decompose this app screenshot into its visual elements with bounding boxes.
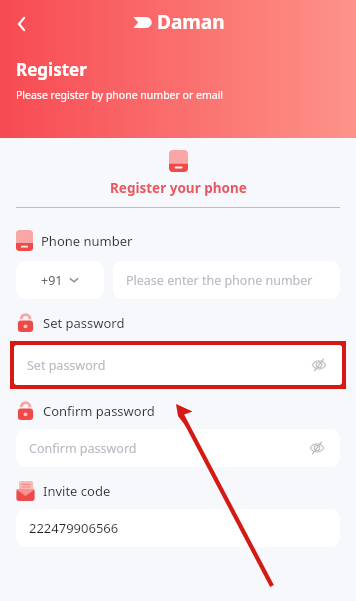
button[interactable]: Set password — [14, 345, 342, 385]
staticText: Please enter the phone number — [126, 272, 313, 289]
staticText: Register your phone — [110, 179, 247, 197]
staticText: Confirm password — [43, 402, 155, 420]
staticText: Invite code — [43, 482, 111, 500]
staticText: Set password — [43, 314, 125, 332]
staticText: Phone number — [41, 232, 133, 250]
staticText: +91 — [41, 272, 63, 289]
button[interactable]: 222479906566 — [16, 509, 340, 547]
button[interactable]: Please enter the phone number — [113, 261, 340, 299]
staticText: Set password — [27, 357, 106, 374]
staticText: Confirm password — [29, 440, 137, 457]
button[interactable]: Show password — [307, 438, 327, 458]
staticText: Daman — [157, 9, 225, 35]
button[interactable]: Confirm password — [16, 429, 340, 467]
button[interactable]: Show password — [309, 355, 329, 375]
button[interactable]: Back — [6, 8, 38, 40]
staticText: Please register by phone number or email — [16, 88, 224, 102]
staticText: Register — [16, 58, 87, 81]
button[interactable]: +91 — [16, 261, 104, 299]
staticText: 222479906566 — [29, 519, 119, 537]
